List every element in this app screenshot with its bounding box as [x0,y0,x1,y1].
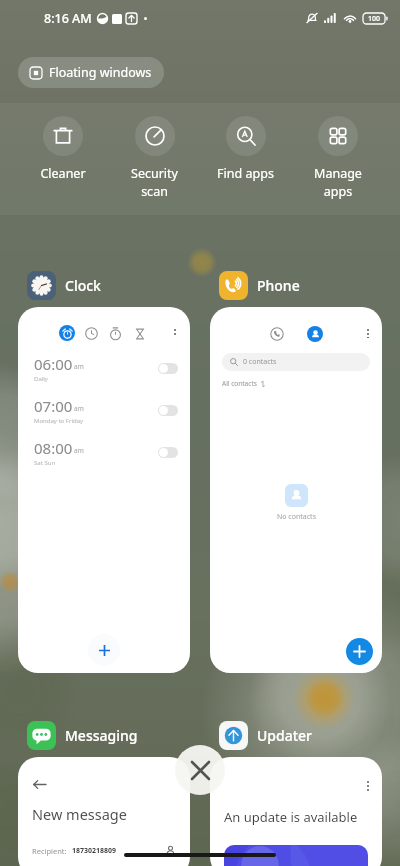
button[interactable]: Toggle alarm [158,447,178,458]
button[interactable]: Security scan [109,116,200,200]
staticText: Messaging [65,726,138,745]
staticText: New message [32,804,127,824]
button[interactable]: 06:00 [34,347,178,389]
button[interactable]: Back [32,777,47,792]
staticText: 100 [368,14,381,24]
button[interactable]: Messaging [18,720,190,750]
button[interactable]: 08:00 [34,431,178,473]
button[interactable]: World clock [84,326,99,341]
staticText: 08:00 [34,438,73,458]
staticText: Find apps [217,165,274,182]
staticText: 18730218809 [72,846,117,856]
staticText: Recipient: [32,846,67,856]
staticText: 8:16 AM [44,10,92,27]
button[interactable]: Clock [18,270,190,300]
button[interactable]: More options [363,325,373,342]
staticText: Clock [65,276,101,295]
button[interactable]: Phone [210,270,382,300]
button[interactable]: 07:00 [34,389,178,431]
staticText: am [74,362,84,371]
button[interactable]: Close all [175,745,225,795]
staticText: Floating windows [49,64,152,81]
staticText: 0 contacts [243,357,277,367]
button[interactable]: Add alarm [88,634,120,666]
button[interactable]: Find apps [200,116,291,182]
staticText: An update is available [224,808,358,826]
button[interactable]: Stopwatch [108,326,123,341]
button[interactable]: Floating windows [18,57,164,88]
staticText: am [74,404,84,413]
staticText: 07:00 [34,396,73,416]
button[interactable]: More options [210,757,382,866]
staticText: Updater [257,726,313,745]
button[interactable]: More options [363,777,373,795]
staticText: Phone [257,276,300,295]
button[interactable]: Toggle alarm [158,405,178,416]
button[interactable]: World clock [18,307,190,673]
button[interactable]: Recents [269,326,284,341]
button[interactable]: All contacts [222,379,266,388]
staticText: Daily [34,375,48,383]
staticText: All contacts [222,379,257,388]
button[interactable]: Cleaner [17,116,108,182]
button[interactable]: Timer [132,326,147,341]
staticText: Monday to Friday [34,417,84,425]
button[interactable]: Updater [210,720,382,750]
staticText: am [74,446,84,455]
button[interactable]: Recents [210,307,382,673]
staticText: Cleaner [40,165,86,182]
staticText: Sat Sun [34,459,56,467]
staticText: 06:00 [34,354,73,374]
staticText: No contacts [277,512,316,522]
button[interactable]: Add contact [346,638,373,665]
button[interactable]: Toggle alarm [158,363,178,374]
staticText: Security scan [131,165,178,200]
button[interactable]: Manage apps [292,116,383,200]
button[interactable]: More options [170,325,180,341]
button[interactable]: Back [18,757,190,866]
staticText: Manage apps [314,165,362,200]
button[interactable]: 0 contacts [222,353,370,371]
